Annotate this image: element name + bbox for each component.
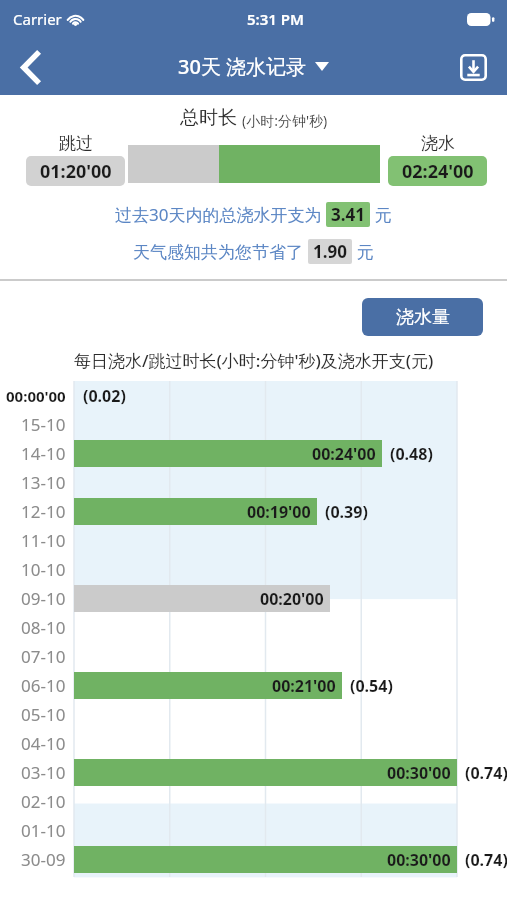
staticText: 每日浇水/跳过时长(小时:分钟'秒)及浇水开支(元) xyxy=(74,349,434,372)
staticText: (0.02) xyxy=(83,385,126,407)
button[interactable]: 浇水量 xyxy=(362,298,483,336)
staticText: 10-10 xyxy=(21,558,66,581)
staticText: 13-10 xyxy=(21,471,66,494)
staticText: 15-10 xyxy=(21,413,66,436)
staticText: 01-10 xyxy=(21,819,66,842)
staticText: (0.74) xyxy=(465,762,507,784)
staticText: 总时长 xyxy=(180,104,242,130)
staticText: 30天 浇水记录 xyxy=(178,53,307,80)
staticText: 04-10 xyxy=(21,732,66,755)
staticText: (小时:分钟'秒) xyxy=(242,111,328,130)
button[interactable]: Download xyxy=(451,45,495,89)
staticText: 14-10 xyxy=(21,442,66,465)
staticText: (0.74) xyxy=(465,849,507,871)
staticText: 00:00'00 xyxy=(6,386,66,406)
staticText: 00:21'00 xyxy=(272,675,336,697)
staticText: 天气感知共为您节省了 xyxy=(133,240,308,263)
staticText: 09-10 xyxy=(21,587,66,610)
staticText: (0.39) xyxy=(325,501,368,523)
staticText: 30-09 xyxy=(21,848,66,871)
staticText: (0.54) xyxy=(350,675,393,697)
staticText: 00:30'00 xyxy=(387,762,451,784)
staticText: 07-10 xyxy=(21,645,66,668)
staticText: 00:20'00 xyxy=(260,588,324,610)
staticText: 5:31 PM xyxy=(247,9,304,29)
staticText: 05-10 xyxy=(21,703,66,726)
staticText: 元 xyxy=(352,240,374,263)
staticText: 00:30'00 xyxy=(387,849,451,871)
staticText: 03-10 xyxy=(21,761,66,784)
staticText: 01:20'00 xyxy=(40,159,112,184)
staticText: 12-10 xyxy=(21,500,66,523)
staticText: 浇水 xyxy=(421,133,455,154)
staticText: Carrier xyxy=(13,9,62,29)
staticText: 11-10 xyxy=(21,529,66,552)
staticText: 00:19'00 xyxy=(247,501,311,523)
staticText: 浇水量 xyxy=(396,306,450,329)
staticText: 1.90 xyxy=(313,240,347,263)
staticText: 过去30天内的总浇水开支为 xyxy=(115,203,326,226)
staticText: 跳过 xyxy=(59,133,93,154)
staticText: 02-10 xyxy=(21,790,66,813)
staticText: (0.48) xyxy=(390,443,433,465)
staticText: 02:24'00 xyxy=(402,159,474,184)
staticText: 00:24'00 xyxy=(312,443,376,465)
button[interactable]: 30天 浇水记录 xyxy=(178,53,329,80)
staticText: 06-10 xyxy=(21,674,66,697)
staticText: 3.41 xyxy=(331,203,365,226)
staticText: 元 xyxy=(370,203,392,226)
button[interactable]: Back xyxy=(6,43,54,91)
staticText: 08-10 xyxy=(21,616,66,639)
